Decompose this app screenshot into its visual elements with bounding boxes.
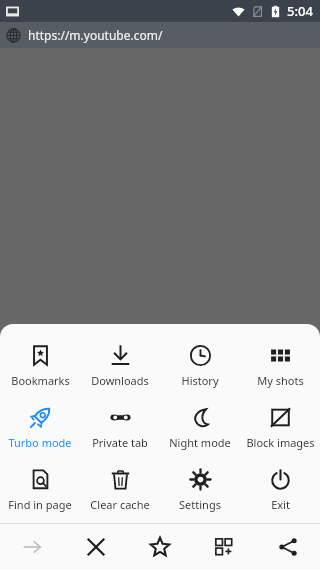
- staticText: 5:04: [287, 2, 313, 20]
- button[interactable]: Bookmarks: [0, 335, 80, 397]
- staticText: Exit: [271, 497, 290, 512]
- button[interactable]: My shots: [240, 335, 320, 397]
- staticText: Bookmarks: [11, 373, 70, 388]
- staticText: Turbo mode: [8, 435, 72, 450]
- button[interactable]: Add bookmark: [128, 524, 192, 570]
- staticText: Private tab: [92, 435, 148, 450]
- button[interactable]: History: [160, 335, 240, 397]
- staticText: Night mode: [169, 435, 231, 450]
- button[interactable]: New tab: [192, 524, 256, 570]
- staticText: Clear cache: [90, 497, 150, 512]
- staticText: Block images: [246, 435, 315, 450]
- staticText: Downloads: [91, 373, 149, 388]
- button[interactable]: Night mode: [160, 397, 240, 459]
- button[interactable]: Settings: [160, 459, 240, 521]
- staticText: History: [181, 373, 219, 388]
- staticText: https://m.youtube.com/: [28, 27, 163, 43]
- button[interactable]: Downloads: [80, 335, 160, 397]
- staticText: Settings: [179, 497, 221, 512]
- button[interactable]: Exit: [240, 459, 320, 521]
- button[interactable]: Private tab: [80, 397, 160, 459]
- staticText: My shots: [257, 373, 304, 388]
- button[interactable]: Turbo mode: [0, 397, 80, 459]
- button[interactable]: Stop: [64, 524, 128, 570]
- button[interactable]: Find in page: [0, 459, 80, 521]
- button[interactable]: Forward: [0, 524, 64, 570]
- button[interactable]: Share: [256, 524, 320, 570]
- staticText: Find in page: [8, 497, 72, 512]
- button[interactable]: Clear cache: [80, 459, 160, 521]
- button[interactable]: Block images: [240, 397, 320, 459]
